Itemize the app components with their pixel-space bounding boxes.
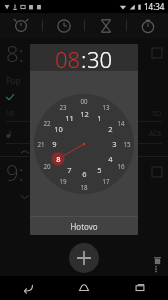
- staticText: :: [81, 44, 87, 71]
- staticText: 30: [87, 44, 113, 71]
- staticText: NE: [6, 109, 16, 119]
- staticText: 21: [37, 140, 45, 148]
- staticText: 17: [102, 177, 110, 185]
- staticText: 14: [117, 119, 125, 127]
- staticText: 08: [55, 44, 81, 71]
- button[interactable]: 08: [55, 44, 81, 71]
- staticText: 6: [82, 169, 87, 179]
- button[interactable]: Alarm: [0, 13, 42, 38]
- staticText: 2: [108, 124, 113, 134]
- button[interactable]: Home: [56, 276, 112, 300]
- button[interactable]: More options: [150, 263, 162, 275]
- staticText: 18: [80, 183, 88, 191]
- staticText: Pop: [6, 75, 21, 86]
- button[interactable]: Hotovo: [30, 217, 138, 235]
- staticText: 13: [102, 103, 110, 111]
- staticText: 11: [65, 113, 74, 123]
- staticText: ACE: [149, 129, 162, 139]
- staticText: 8:: [6, 38, 24, 68]
- button[interactable]: Back: [0, 276, 56, 300]
- button[interactable]: Delete: [150, 253, 164, 267]
- button[interactable]: Stopwatch: [127, 13, 168, 38]
- staticText: 5: [97, 165, 102, 175]
- staticText: 00: [80, 97, 88, 105]
- staticText: 10: [54, 124, 63, 134]
- staticText: SO: [152, 109, 162, 119]
- staticText: 22: [43, 119, 51, 127]
- staticText: 20: [43, 162, 51, 170]
- button[interactable]: Recents: [112, 276, 168, 300]
- button[interactable]: Add alarm: [69, 243, 99, 273]
- staticText: 4: [108, 154, 113, 164]
- staticText: Hotovo: [70, 221, 98, 232]
- staticText: 7: [67, 165, 72, 175]
- staticText: 1: [97, 113, 102, 123]
- staticText: 3: [112, 139, 117, 149]
- button[interactable]: 30: [87, 44, 113, 71]
- staticText: 8: [56, 154, 61, 164]
- staticText: 15: [123, 140, 131, 148]
- staticText: 14:34: [144, 1, 165, 12]
- staticText: 9:: [6, 157, 24, 187]
- staticText: 9: [52, 139, 57, 149]
- button[interactable]: Clock: [43, 13, 84, 38]
- button[interactable]: Timer: [85, 13, 126, 38]
- staticText: 16: [117, 162, 125, 170]
- staticText: 19: [59, 177, 67, 185]
- staticText: 23: [59, 103, 67, 111]
- staticText: 12: [80, 109, 89, 119]
